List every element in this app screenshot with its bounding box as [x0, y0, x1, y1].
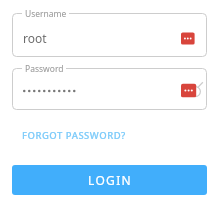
button[interactable]: Username options [181, 30, 198, 47]
button[interactable]: LOGIN [12, 165, 207, 195]
staticText: LOGIN [88, 172, 132, 188]
staticText: FORGOT PASSWORD? [22, 129, 126, 142]
staticText: Password [25, 63, 64, 75]
button[interactable]: FORGOT PASSWORD? [20, 126, 128, 145]
staticText: Username [25, 8, 67, 20]
button[interactable]: root [12, 13, 207, 57]
button[interactable]: Show password [181, 81, 200, 100]
button[interactable]: Show password [12, 68, 207, 110]
staticText: root [23, 30, 47, 46]
